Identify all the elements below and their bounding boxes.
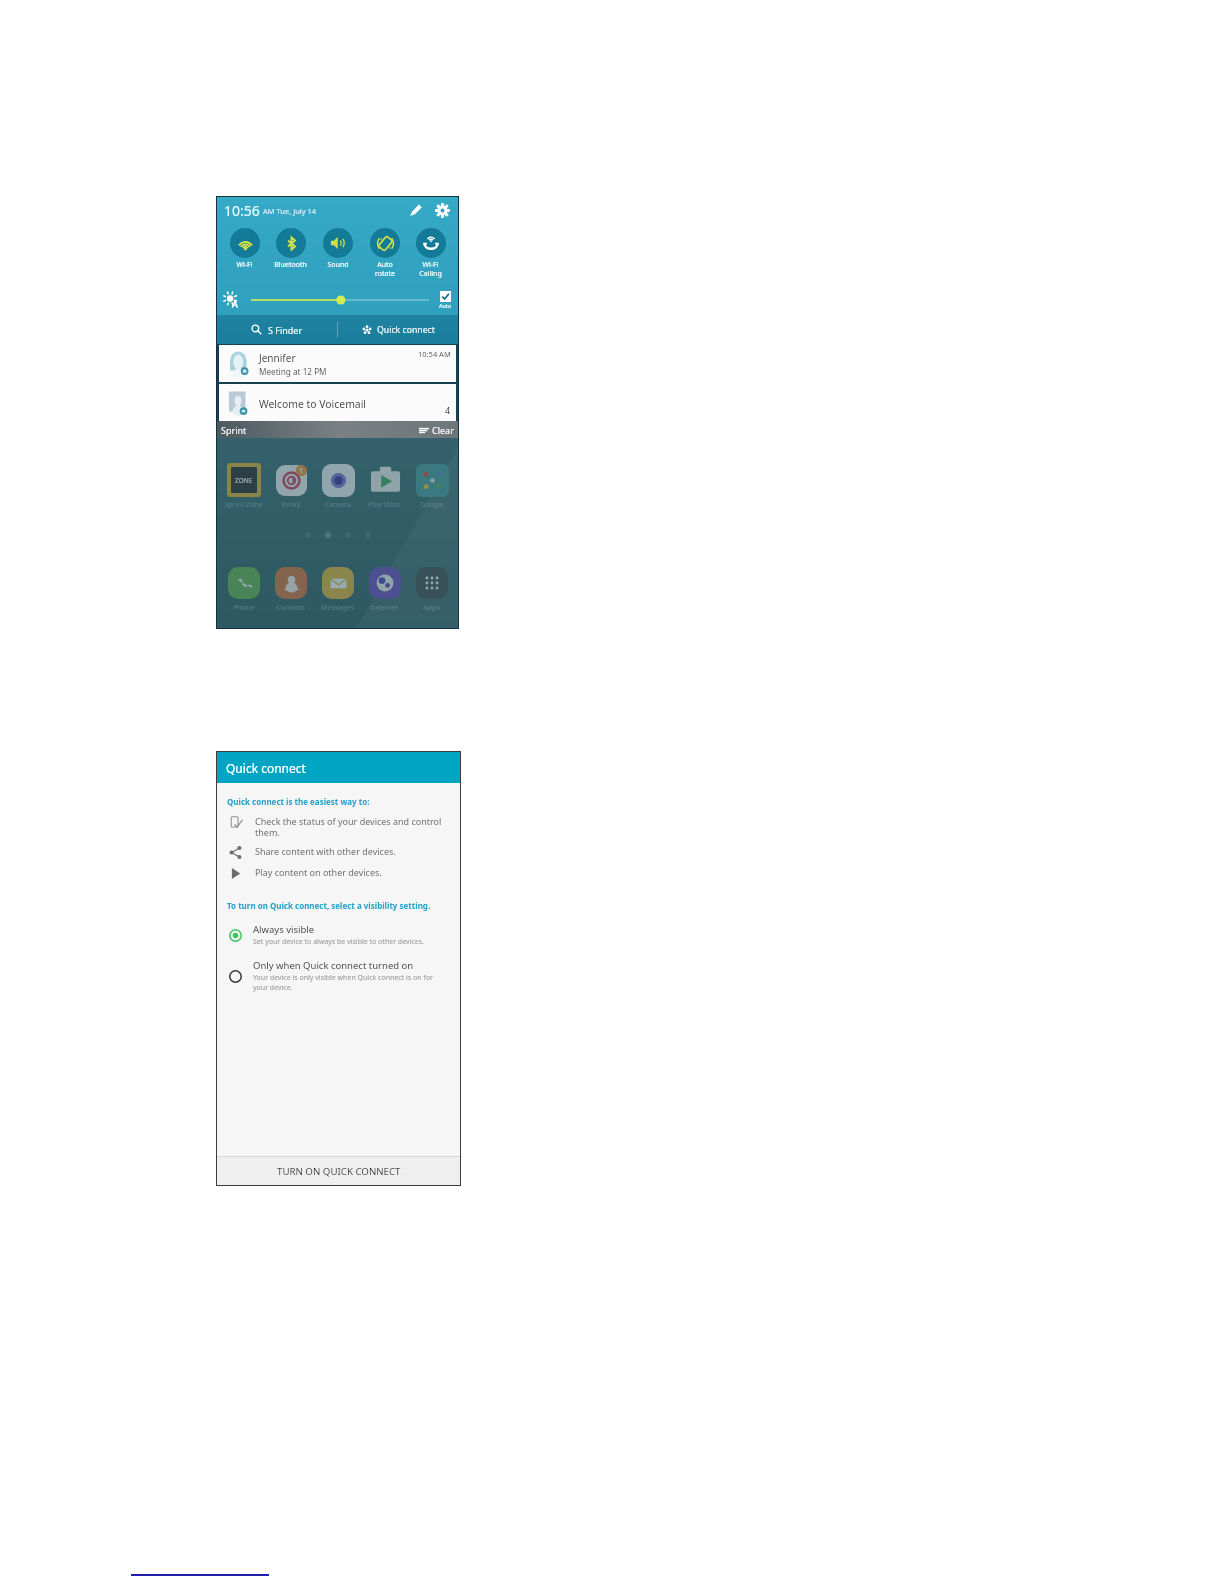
staticText: 10:54 AM — [418, 349, 451, 359]
staticText: Apps — [423, 603, 440, 613]
staticText: Meeting at 12 PM — [259, 366, 327, 377]
button[interactable]: Quick connect — [338, 315, 458, 344]
staticText: Check the status of your devices and con… — [255, 815, 442, 839]
button[interactable]: Apps — [409, 566, 454, 613]
staticText: Camera — [325, 500, 351, 510]
staticText: Jennifer — [259, 351, 296, 365]
button[interactable]: Play Store — [362, 463, 407, 510]
staticText: Phone — [233, 603, 255, 613]
button[interactable]: Wi-Fi — [222, 223, 267, 270]
button[interactable]: Contacts — [268, 566, 313, 613]
button[interactable]: Edit quick settings — [409, 203, 423, 217]
button[interactable]: Bluetooth — [268, 223, 313, 270]
staticText: Sound — [327, 260, 349, 270]
staticText: Bluetooth — [274, 260, 307, 270]
button[interactable]: Auto brightness — [440, 291, 451, 302]
staticText: Play Store — [368, 500, 401, 510]
button[interactable]: Welcome to Voicemail — [219, 384, 456, 421]
staticText: Auto rotate — [375, 260, 395, 278]
staticText: Wi-Fi Calling — [419, 260, 442, 278]
staticText: Internet — [371, 603, 398, 613]
staticText: Play content on other devices. — [255, 866, 382, 878]
staticText: AM Tue, July 14 — [263, 206, 317, 216]
staticText: Your device is only visible when Quick c… — [253, 973, 433, 993]
staticText: S Finder — [268, 324, 303, 336]
button[interactable]: Phone — [221, 566, 266, 613]
staticText: Quick connect — [377, 324, 435, 336]
button[interactable]: S Finder — [217, 315, 337, 344]
button[interactable]: Google — [409, 463, 454, 510]
button[interactable]: Internet — [362, 566, 407, 613]
staticText: Sprint Zone — [224, 500, 263, 510]
button[interactable]: Only when Quick connect turned on — [217, 959, 460, 993]
button[interactable]: TURN ON QUICK CONNECT — [217, 1157, 460, 1185]
staticText: ZONE — [235, 476, 253, 485]
button[interactable]: Sound — [315, 223, 360, 270]
button[interactable]: Wi-Fi Calling — [408, 223, 453, 278]
staticText: Welcome to Voicemail — [259, 397, 367, 411]
button[interactable]: Messages — [315, 566, 360, 613]
staticText: TURN ON QUICK CONNECT — [277, 1165, 401, 1178]
staticText: Quick connect is the easiest way to: — [227, 796, 370, 807]
button[interactable]: Jennifer — [219, 345, 456, 382]
button[interactable]: Auto rotate — [362, 223, 407, 278]
staticText: Google — [420, 500, 444, 510]
button[interactable]: Clear — [419, 424, 454, 436]
staticText: Share content with other devices. — [255, 845, 396, 857]
staticText: Always visible — [253, 923, 315, 936]
button[interactable]: Settings — [435, 203, 450, 218]
staticText: Only when Quick connect turned on — [253, 959, 414, 972]
button[interactable]: 1 — [268, 463, 313, 510]
staticText: Clear — [432, 424, 454, 436]
staticText: Email — [282, 500, 300, 510]
staticText: To turn on Quick connect, select a visib… — [227, 900, 431, 911]
staticText: 1 — [299, 466, 304, 476]
button[interactable]: Brightness — [251, 294, 429, 306]
button[interactable]: Camera — [315, 463, 360, 510]
button[interactable]: ZONE — [221, 463, 266, 510]
staticText: Messages — [321, 603, 354, 613]
staticText: 10:56 — [224, 201, 260, 220]
staticText: Sprint — [221, 424, 247, 436]
staticText: Contacts — [276, 603, 305, 613]
staticText: Auto — [439, 302, 452, 309]
button[interactable]: Always visible — [217, 923, 460, 947]
staticText: 4 — [445, 404, 451, 416]
staticText: Quick connect — [226, 760, 306, 776]
staticText: Set your device to always be visible to … — [253, 937, 424, 947]
staticText: Wi-Fi — [236, 260, 253, 270]
